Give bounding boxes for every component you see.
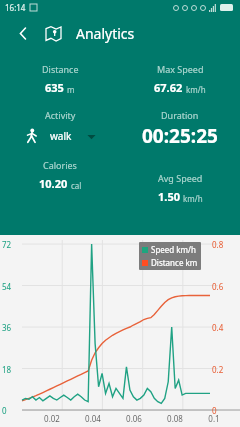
staticText: 0.04 [81, 413, 105, 424]
staticText: 16:14 [5, 2, 26, 13]
staticText: Duration [161, 109, 199, 121]
staticText: 00:25:25 [142, 123, 218, 149]
staticText: Avg Speed [158, 172, 203, 184]
staticText: km/h [183, 193, 203, 204]
staticText: 72 [2, 239, 20, 250]
staticText: 635 [45, 80, 64, 95]
staticText: 0.4 [212, 322, 238, 333]
staticText: 0.02 [40, 413, 64, 424]
staticText: 0.08 [163, 413, 187, 424]
staticText: 0.1 [202, 413, 226, 424]
button[interactable]: Speed km/h [139, 242, 201, 270]
staticText: Distance km [151, 257, 198, 268]
staticText: 1.50 [158, 189, 180, 204]
staticText: 0 [2, 405, 20, 416]
staticText: km/h [186, 84, 206, 95]
staticText: 18 [2, 364, 20, 375]
staticText: cal [71, 180, 82, 191]
staticText: Analytics [76, 24, 135, 43]
staticText: 67.62 [154, 80, 183, 95]
button[interactable]: walk [21, 128, 100, 144]
staticText: 54 [2, 281, 20, 292]
staticText: 36 [2, 322, 20, 333]
staticText: 0 [212, 405, 238, 416]
staticText: 0.2 [212, 364, 238, 375]
staticText: 0.06 [122, 413, 146, 424]
button[interactable]: Back [12, 22, 34, 44]
staticText: Distance [42, 63, 79, 75]
button[interactable]: Map [42, 22, 64, 44]
staticText: Calories [43, 159, 77, 171]
staticText: walk [50, 129, 72, 143]
staticText: Max Speed [157, 63, 204, 75]
staticText: Speed km/h [151, 244, 197, 255]
staticText: Activity [45, 109, 76, 121]
staticText: m [67, 84, 75, 95]
staticText: 0.6 [212, 281, 238, 292]
staticText: 10.20 [39, 176, 68, 191]
staticText: 0.8 [212, 239, 238, 250]
